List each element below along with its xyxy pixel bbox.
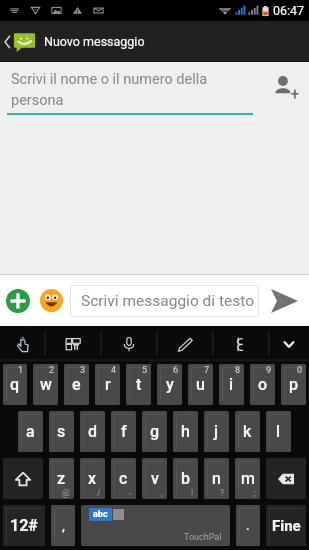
button[interactable]: h [173, 411, 198, 452]
staticText: 2 [49, 365, 55, 376]
button[interactable]: i [219, 364, 244, 405]
button[interactable]: Send [259, 275, 309, 326]
button[interactable]: Add attachment [0, 275, 36, 326]
button[interactable]: . [236, 505, 260, 546]
staticText: 3 [80, 365, 86, 376]
button[interactable]: t [126, 364, 151, 405]
button[interactable]: c [111, 458, 136, 499]
button[interactable]: j [204, 411, 229, 452]
staticText: 06:47 [273, 3, 305, 18]
staticText: u [196, 375, 205, 394]
staticText: / [97, 488, 101, 498]
button[interactable]: z [49, 458, 74, 499]
staticText: j [214, 422, 219, 441]
staticText: p [289, 375, 298, 394]
button[interactable]: m [235, 458, 260, 499]
button[interactable]: Space [81, 505, 230, 546]
button[interactable]: y [157, 364, 182, 405]
button[interactable]: k [235, 411, 260, 452]
staticText: h [181, 422, 190, 441]
staticText: ; [254, 488, 256, 498]
button[interactable]: Back [0, 21, 145, 62]
staticText: 7 [204, 365, 210, 376]
staticText: t [136, 375, 142, 394]
staticText: q [10, 375, 20, 394]
button[interactable]: Draw [157, 326, 213, 361]
staticText: Scrivi messaggio di testo [81, 292, 254, 310]
staticText: TouchPal [184, 532, 222, 543]
button[interactable]: Scrivi messaggio di testo [70, 285, 259, 317]
staticText: 0 [297, 365, 303, 376]
staticText: o [258, 375, 268, 394]
button[interactable]: n [204, 458, 229, 499]
staticText: w [40, 375, 52, 394]
staticText: Nuovo messaggio [44, 34, 145, 49]
button[interactable]: v [142, 458, 167, 499]
button[interactable]: o [250, 364, 275, 405]
button[interactable]: Voice input [101, 326, 157, 361]
button[interactable]: g [142, 411, 167, 452]
staticText: 4 [111, 365, 117, 376]
button[interactable]: a [18, 411, 43, 452]
button[interactable]: Insert emoji [36, 275, 66, 326]
staticText: v [151, 469, 159, 488]
staticText: y [166, 375, 174, 394]
staticText: , [62, 518, 65, 533]
staticText: m [241, 469, 255, 488]
staticText: 12# [10, 516, 38, 535]
staticText: a [26, 422, 35, 441]
staticText: k [243, 422, 252, 441]
staticText: e [72, 375, 81, 394]
staticText: c [119, 469, 128, 488]
staticText: 6 [173, 365, 179, 376]
staticText: d [88, 422, 98, 441]
staticText: , [161, 488, 163, 498]
button[interactable]: b [173, 458, 198, 499]
staticText: x [88, 469, 97, 488]
staticText: ? [220, 488, 225, 498]
staticText: s [57, 422, 66, 441]
button[interactable]: Shift [3, 458, 43, 499]
staticText: 1 [18, 365, 24, 376]
button[interactable]: Gesture [213, 326, 269, 361]
staticText: z [57, 469, 66, 488]
staticText: Fine [272, 517, 301, 535]
button[interactable]: r [95, 364, 120, 405]
staticText: 8 [235, 365, 241, 376]
button[interactable]: Backspace [266, 458, 306, 499]
staticText: 9 [266, 365, 272, 376]
staticText: g [150, 422, 160, 441]
button[interactable]: , [51, 505, 75, 546]
staticText: - [129, 488, 132, 498]
staticText: abc [93, 509, 108, 520]
button[interactable]: Add contact [269, 70, 301, 102]
staticText: . [246, 518, 250, 533]
button[interactable]: q [3, 364, 27, 405]
staticText: ! [191, 488, 194, 498]
button[interactable]: d [80, 411, 105, 452]
staticText: 5 [142, 365, 148, 376]
staticText: i [229, 375, 234, 394]
button[interactable]: s [49, 411, 74, 452]
button[interactable]: l [266, 411, 291, 452]
button[interactable]: Fine [266, 505, 306, 546]
staticText: b [181, 469, 190, 488]
staticText: l [276, 422, 281, 441]
button[interactable]: 12# [3, 505, 45, 546]
staticText: r [105, 375, 111, 394]
button[interactable]: f [111, 411, 136, 452]
button[interactable]: Hide keyboard [269, 326, 309, 361]
button[interactable]: w [33, 364, 58, 405]
button[interactable]: Handwriting [0, 326, 45, 361]
button[interactable]: p [281, 364, 306, 405]
staticText: Scrivi il nome o il numero della persona [11, 71, 238, 108]
staticText: f [121, 422, 127, 441]
button[interactable]: e [64, 364, 89, 405]
button[interactable]: u [188, 364, 213, 405]
button[interactable]: x [80, 458, 105, 499]
staticText: n [212, 469, 221, 488]
other: Back [4, 35, 11, 49]
staticText: @ [62, 488, 70, 498]
button[interactable]: Layout [45, 326, 101, 361]
